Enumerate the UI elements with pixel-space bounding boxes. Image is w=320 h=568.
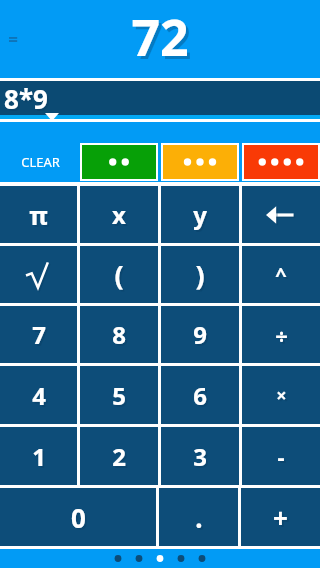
button[interactable]: ) (161, 246, 239, 303)
button[interactable]: 0 (0, 488, 156, 546)
staticText: + (273, 500, 288, 535)
staticText: ÷ (277, 322, 290, 352)
button[interactable]: CLEAR (0, 143, 80, 181)
staticText: x (112, 198, 126, 231)
staticText: × (278, 385, 289, 410)
staticText: 9 (193, 318, 207, 351)
staticText: 8*9 (6, 83, 50, 117)
staticText: 1 (34, 442, 48, 475)
staticText: y (195, 200, 209, 233)
staticText: ^ (277, 263, 289, 290)
button[interactable]: ^ (242, 246, 320, 303)
button[interactable]: 8 (80, 306, 158, 363)
button[interactable]: 3 (161, 427, 239, 485)
staticText: 8*9 (4, 81, 48, 115)
staticText: ) (195, 256, 205, 293)
staticText: 3 (193, 440, 207, 473)
staticText: 5 (114, 381, 128, 414)
staticText: 0 (71, 500, 86, 535)
staticText: 2 (114, 442, 128, 475)
staticText: × (276, 383, 287, 408)
button[interactable]: 4 (0, 366, 77, 424)
staticText: 6 (195, 381, 209, 414)
staticText: y (193, 198, 207, 231)
button[interactable]: Difficulty level 2 (82, 145, 156, 179)
button[interactable]: 7 (0, 306, 77, 363)
staticText: . (197, 502, 205, 537)
staticText: - (277, 441, 285, 471)
staticText: . (195, 500, 203, 535)
staticText: = (8, 28, 18, 51)
button[interactable]: 1 (0, 427, 77, 485)
button[interactable]: 8*9 (0, 81, 320, 115)
staticText: 4 (32, 379, 46, 412)
staticText: ^ (275, 261, 287, 288)
staticText: 3 (195, 442, 209, 475)
staticText: 8 (112, 318, 126, 351)
staticText: 9 (195, 320, 209, 353)
button[interactable]: Backspace (242, 186, 320, 243)
button[interactable]: 5 (80, 366, 158, 424)
button[interactable]: ( (80, 246, 158, 303)
staticText: 72 (134, 6, 192, 74)
staticText: 5 (112, 379, 126, 412)
staticText: ) (197, 258, 207, 295)
staticText: π (31, 200, 50, 234)
staticText: 2 (112, 440, 126, 473)
staticText: π (29, 198, 48, 232)
staticText: 8 (114, 320, 128, 353)
button[interactable]: Difficulty level 4 (244, 145, 318, 179)
staticText: CLEAR (21, 153, 60, 171)
button[interactable]: + (241, 488, 320, 546)
staticText: 0 (73, 502, 88, 537)
button[interactable]: y (161, 186, 239, 243)
staticText: ÷ (275, 320, 288, 350)
button[interactable]: . (159, 488, 238, 546)
staticText: x (114, 200, 128, 233)
staticText: 7 (32, 318, 46, 351)
button[interactable]: 2 (80, 427, 158, 485)
button[interactable]: 6 (161, 366, 239, 424)
staticText: + (275, 502, 290, 537)
button[interactable]: ÷ (242, 306, 320, 363)
button[interactable]: 9 (161, 306, 239, 363)
staticText: - (279, 443, 287, 473)
staticText: 4 (34, 381, 48, 414)
staticText: 7 (34, 320, 48, 353)
staticText: 6 (193, 379, 207, 412)
staticText: ( (116, 258, 126, 295)
staticText: 72 (131, 3, 189, 71)
staticText: ( (114, 256, 124, 293)
button[interactable]: - (242, 427, 320, 485)
button[interactable]: Square root (0, 246, 77, 303)
button[interactable]: π (0, 186, 77, 243)
button[interactable]: × (242, 366, 320, 424)
staticText: 1 (32, 440, 46, 473)
button[interactable]: Difficulty level 3 (163, 145, 237, 179)
button[interactable]: x (80, 186, 158, 243)
staticText: = (8, 28, 18, 51)
